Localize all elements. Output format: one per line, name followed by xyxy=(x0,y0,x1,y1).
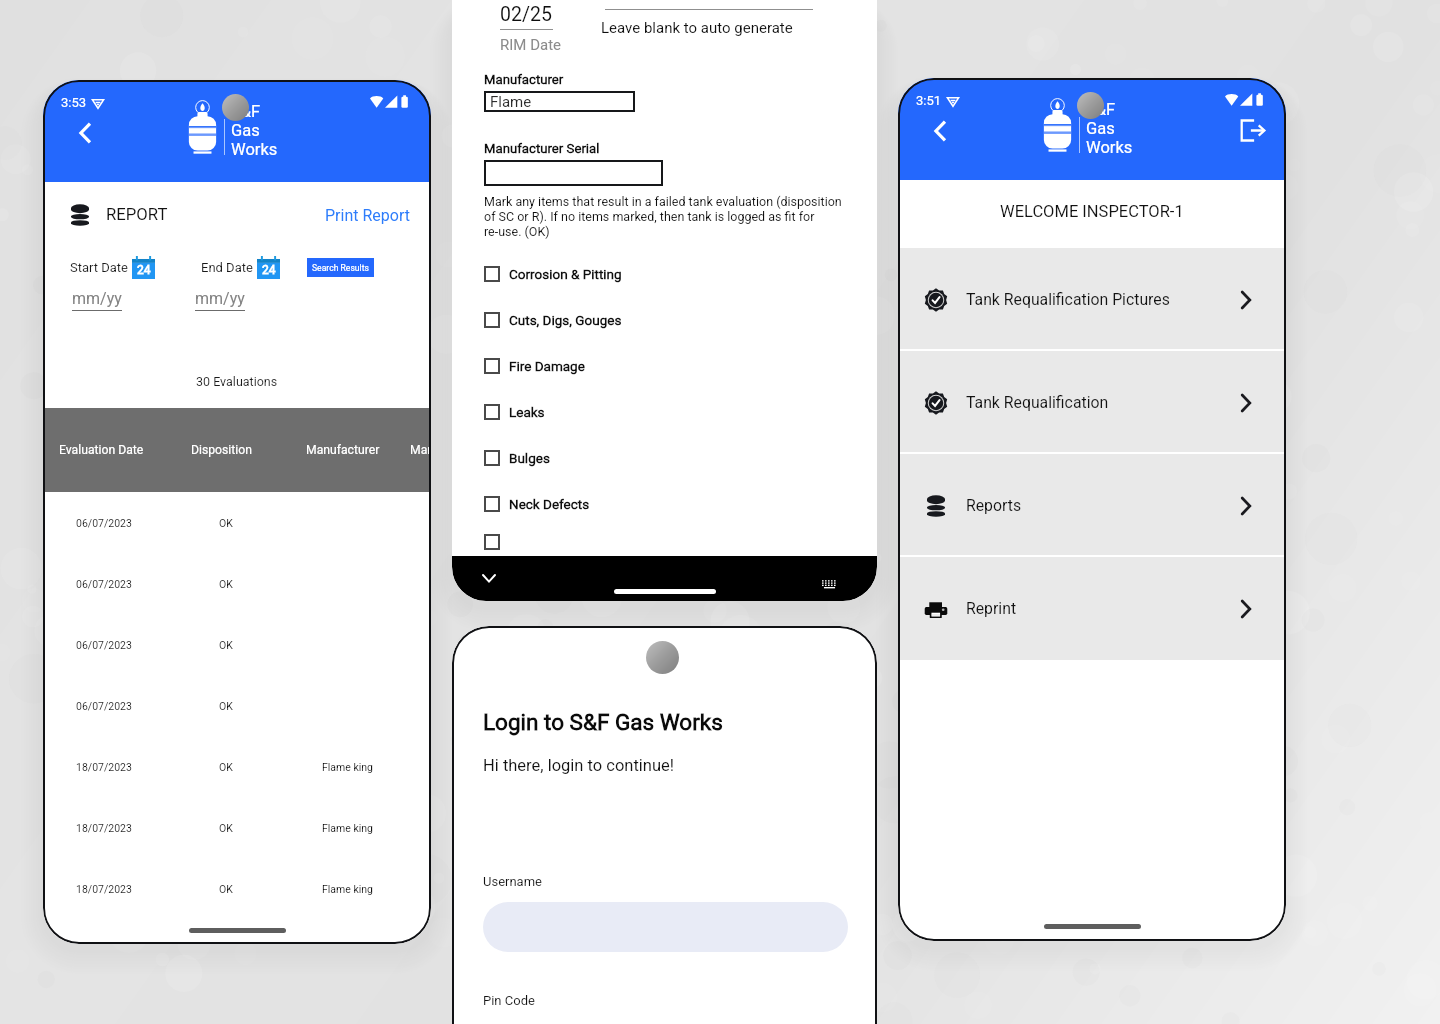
staticText: S&F xyxy=(231,102,261,121)
button[interactable]: Pick end date xyxy=(257,256,280,279)
staticText: 06/07/2023 xyxy=(76,517,132,529)
staticText: OK xyxy=(219,883,233,895)
staticText: RIM Date xyxy=(500,36,562,54)
staticText: Disposition xyxy=(191,443,252,457)
staticText: Fire Damage xyxy=(509,358,585,374)
staticText: Mark any items that result in a failed t… xyxy=(484,194,844,239)
button[interactable]: Leaks xyxy=(484,389,877,435)
staticText: Print Report xyxy=(325,206,410,225)
button[interactable]: 06/07/2023 xyxy=(43,614,431,675)
staticText: Leaks xyxy=(509,404,545,420)
staticText: 02/25 xyxy=(500,3,552,26)
staticText: Flame xyxy=(490,93,532,111)
staticText: Manufacturer xyxy=(306,443,380,457)
staticText: OK xyxy=(219,578,233,590)
staticText: Flame king xyxy=(322,822,374,834)
staticText: REPORT xyxy=(106,205,168,225)
staticText: Flame king xyxy=(322,883,374,895)
staticText: 30 Evaluations xyxy=(196,374,278,389)
button[interactable]: Tank Requalification Pictures xyxy=(898,248,1286,351)
staticText: Tank Requalification Pictures xyxy=(966,290,1170,309)
button[interactable]: 18/07/2023 xyxy=(43,736,431,797)
button[interactable]: 06/07/2023 xyxy=(43,675,431,736)
staticText: Flame king xyxy=(322,761,374,773)
staticText: Start Date xyxy=(70,260,128,275)
staticText: 06/07/2023 xyxy=(76,578,132,590)
staticText: End Date xyxy=(201,260,253,275)
button[interactable]: 18/07/2023 xyxy=(43,797,431,858)
staticText: Evaluation Date xyxy=(59,443,144,457)
staticText: S&F xyxy=(1086,100,1116,119)
button[interactable]: 18/07/2023 xyxy=(43,858,431,919)
staticText: Bulges xyxy=(509,450,550,466)
staticText: Works xyxy=(1086,138,1133,157)
staticText: OK xyxy=(219,639,233,651)
staticText: 24 xyxy=(137,263,151,277)
staticText: 24 xyxy=(262,263,276,277)
button[interactable]: Neck Defects xyxy=(484,481,877,527)
staticText: Manufacturer Serial xyxy=(484,141,600,156)
staticText: Leave blank to auto generate xyxy=(601,19,793,37)
staticText: Manufacturer xyxy=(484,72,564,87)
staticText: 06/07/2023 xyxy=(76,700,132,712)
staticText: Tank Requalification xyxy=(966,393,1109,412)
button[interactable]: Reprint xyxy=(898,557,1286,660)
staticText: 18/07/2023 xyxy=(76,883,132,895)
button[interactable]: Username input xyxy=(483,902,848,952)
staticText: Hi there, login to continue! xyxy=(483,756,675,775)
staticText: WELCOME INSPECTOR-1 xyxy=(1000,202,1184,221)
button[interactable]: Reports xyxy=(898,454,1286,557)
button[interactable]: Fire Damage xyxy=(484,343,877,389)
button[interactable]: 06/07/2023 xyxy=(43,492,431,553)
button[interactable]: Back xyxy=(62,110,107,155)
staticText: Gas xyxy=(1086,119,1115,138)
staticText: Neck Defects xyxy=(509,496,590,512)
button[interactable]: Hide keyboard xyxy=(478,567,500,589)
button[interactable]: Cuts, Digs, Gouges xyxy=(484,297,877,343)
staticText: mm/yy xyxy=(72,289,122,308)
staticText: 18/07/2023 xyxy=(76,822,132,834)
button[interactable]: Pick start date xyxy=(132,256,155,279)
staticText: Cuts, Digs, Gouges xyxy=(509,312,622,328)
staticText: Reprint xyxy=(966,599,1017,618)
staticText: Reports xyxy=(966,496,1022,515)
staticText: Pin Code xyxy=(483,993,535,1008)
button[interactable]: Corrosion & Pitting xyxy=(484,251,877,297)
staticText: Works xyxy=(231,140,278,159)
button[interactable]: Search Results xyxy=(307,258,374,277)
button[interactable]: Bulges xyxy=(484,435,877,481)
button[interactable]: Manufacturer serial input xyxy=(484,160,663,186)
button[interactable]: Back xyxy=(917,108,962,153)
staticText: OK xyxy=(219,761,233,773)
staticText: 3:51 xyxy=(916,93,942,108)
button[interactable]: Logout xyxy=(1231,109,1273,151)
staticText: 18/07/2023 xyxy=(76,761,132,773)
button[interactable]: 06/07/2023 xyxy=(43,553,431,614)
button[interactable]: Flame xyxy=(484,91,635,112)
staticText: OK xyxy=(219,517,233,529)
staticText: Gas xyxy=(231,121,260,140)
staticText: Search Results xyxy=(312,263,369,273)
staticText: Login to S&F Gas Works xyxy=(483,709,723,735)
staticText: Manufac xyxy=(410,443,431,457)
staticText: Username xyxy=(483,874,542,889)
staticText: OK xyxy=(219,700,233,712)
button[interactable]: Tank Requalification xyxy=(898,351,1286,454)
staticText: OK xyxy=(219,822,233,834)
button[interactable]: Print Report xyxy=(325,206,410,225)
staticText: Corrosion & Pitting xyxy=(509,266,622,282)
staticText: 06/07/2023 xyxy=(76,639,132,651)
staticText: mm/yy xyxy=(195,289,245,308)
button[interactable]: Keyboard xyxy=(819,574,839,594)
staticText: 3:53 xyxy=(61,95,87,110)
